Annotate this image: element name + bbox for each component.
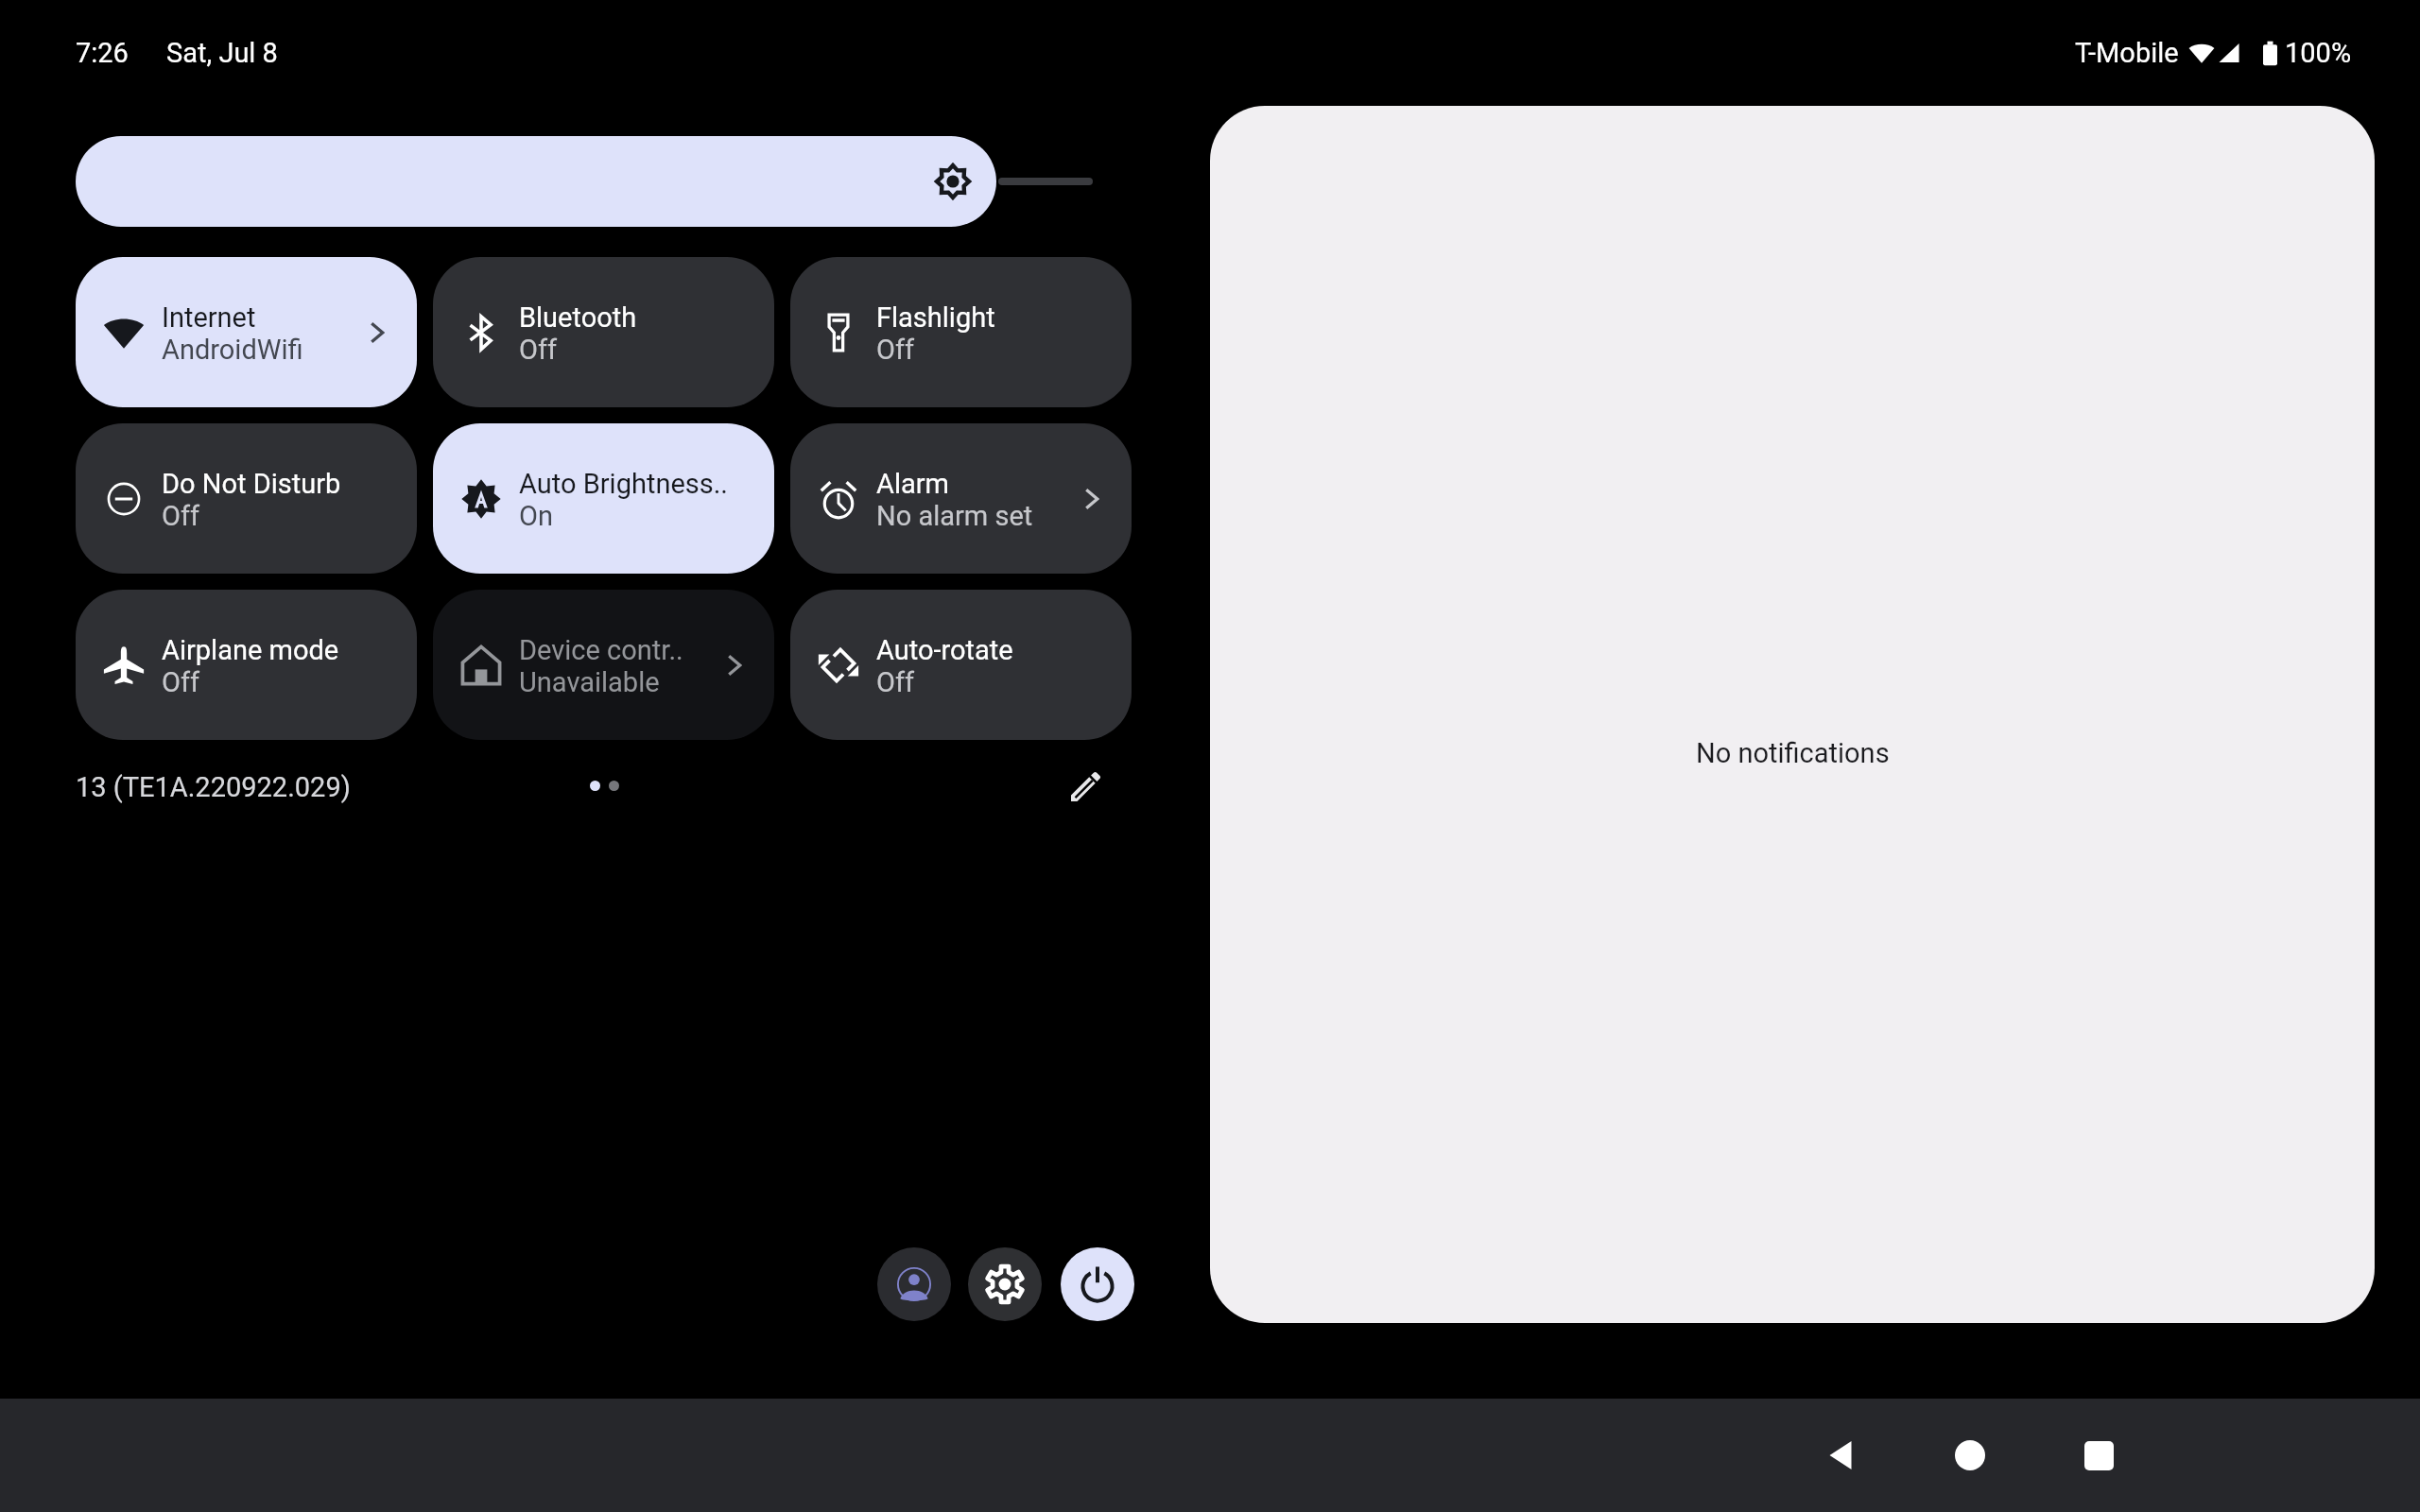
staticText: Internet <box>162 301 256 334</box>
staticText: Unavailable <box>519 666 660 698</box>
staticText: Do Not Disturb <box>162 468 341 500</box>
staticText: Sat, Jul 8 <box>166 37 278 69</box>
button[interactable]: Internet <box>76 257 417 407</box>
staticText: 7:26 <box>76 37 129 69</box>
staticText: 13 (TE1A.220922.029) <box>76 771 351 803</box>
button[interactable]: Back <box>1795 1399 1886 1512</box>
staticText: Off <box>876 334 915 366</box>
staticText: T-Mobile <box>2075 37 2179 69</box>
button[interactable]: Edit tiles <box>1057 758 1114 815</box>
button[interactable]: Flashlight <box>790 257 1132 407</box>
button[interactable]: Device contr.. <box>433 590 774 740</box>
button[interactable]: Home <box>1925 1399 2015 1512</box>
button[interactable]: Settings <box>968 1247 1042 1321</box>
staticText: No notifications <box>1696 737 1890 769</box>
button[interactable]: Recent apps <box>2053 1399 2144 1512</box>
staticText: 100% <box>2285 37 2352 69</box>
staticText: No alarm set <box>876 500 1033 532</box>
staticText: Device contr.. <box>519 634 683 666</box>
staticText: Airplane mode <box>162 634 339 666</box>
button[interactable]: Do Not Disturb <box>76 423 417 574</box>
staticText: Auto-rotate <box>876 634 1013 666</box>
staticText: Off <box>876 666 915 698</box>
staticText: Auto Brightness.. <box>519 468 728 500</box>
button[interactable]: Airplane mode <box>76 590 417 740</box>
button[interactable]: Alarm <box>790 423 1132 574</box>
staticText: Off <box>519 334 558 366</box>
button[interactable]: User account <box>877 1247 951 1321</box>
button[interactable]: Bluetooth <box>433 257 774 407</box>
button[interactable]: Auto-rotate <box>790 590 1132 740</box>
staticText: On <box>519 500 553 532</box>
button[interactable]: Power <box>1061 1247 1134 1321</box>
staticText: Off <box>162 666 200 698</box>
staticText: AndroidWifi <box>162 334 303 366</box>
staticText: Bluetooth <box>519 301 637 334</box>
staticText: Off <box>162 500 200 532</box>
staticText: Flashlight <box>876 301 995 334</box>
staticText: Alarm <box>876 468 950 500</box>
button[interactable]: Brightness <box>76 136 996 227</box>
button[interactable]: Auto Brightness.. <box>433 423 774 574</box>
